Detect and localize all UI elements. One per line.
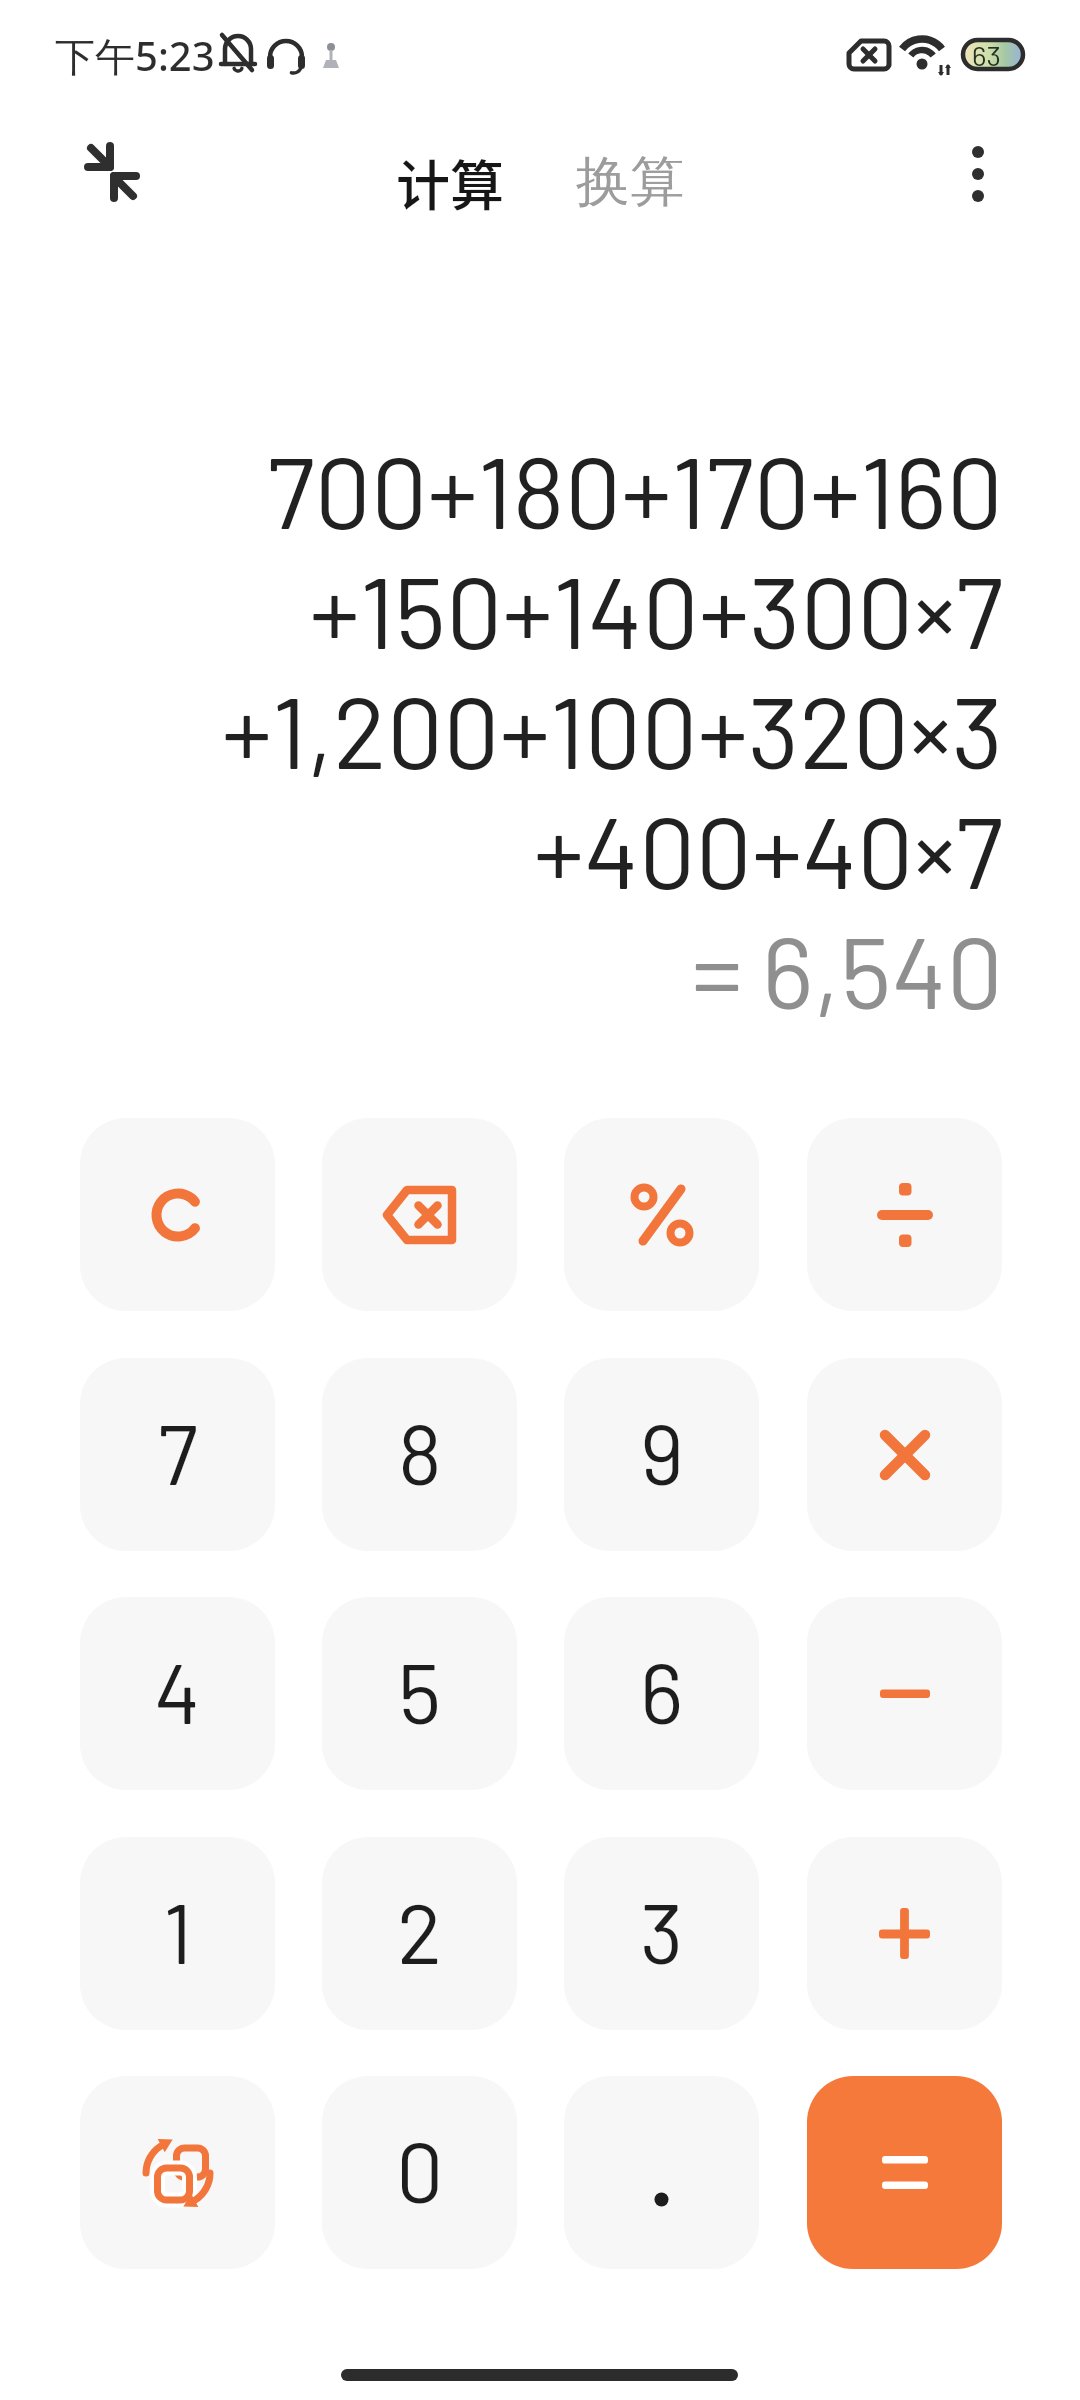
button[interactable] — [807, 1358, 1002, 1551]
staticText: 4 — [154, 1640, 201, 1741]
staticText: 8 — [398, 1401, 442, 1502]
button[interactable] — [807, 1118, 1002, 1311]
staticText: 0 — [396, 2119, 444, 2220]
button[interactable] — [564, 2076, 759, 2269]
staticText: 63 — [972, 38, 1001, 72]
button[interactable] — [807, 1837, 1002, 2030]
staticText: 700+180+170+160 — [0, 429, 1003, 549]
button[interactable] — [80, 2076, 275, 2269]
button[interactable]: 8 — [322, 1358, 517, 1551]
staticText: 2 — [397, 1880, 443, 1981]
button[interactable] — [807, 1597, 1002, 1790]
button[interactable] — [564, 1118, 759, 1311]
button[interactable]: 0 — [322, 2076, 517, 2269]
button[interactable]: 5 — [322, 1597, 517, 1790]
button[interactable]: 换算 — [576, 148, 684, 216]
staticText: 1 — [163, 1880, 193, 1981]
button[interactable] — [322, 1118, 517, 1311]
staticText: +150+140+300×7 — [0, 549, 1003, 669]
button[interactable] — [807, 2076, 1002, 2269]
staticText: 7 — [158, 1401, 198, 1502]
button[interactable]: 计算 — [396, 143, 504, 221]
button[interactable] — [944, 130, 1012, 218]
button[interactable] — [66, 126, 158, 218]
staticText: 下午5:23 — [55, 28, 215, 83]
staticText: +1,200+100+320×3 — [0, 669, 1003, 789]
staticText: 3 — [640, 1880, 684, 1981]
staticText: = 6,540 — [0, 909, 1003, 1029]
button[interactable]: 2 — [322, 1837, 517, 2030]
staticText: 5 — [398, 1640, 442, 1741]
button[interactable]: 7 — [80, 1358, 275, 1551]
button[interactable]: 3 — [564, 1837, 759, 2030]
button[interactable]: 9 — [564, 1358, 759, 1551]
staticText: 6 — [640, 1640, 684, 1741]
staticText: +400+40×7 — [0, 789, 1003, 909]
button[interactable] — [80, 1118, 275, 1311]
button[interactable]: 4 — [80, 1597, 275, 1790]
button[interactable]: 1 — [80, 1837, 275, 2030]
staticText: 9 — [640, 1401, 684, 1502]
button[interactable]: 6 — [564, 1597, 759, 1790]
